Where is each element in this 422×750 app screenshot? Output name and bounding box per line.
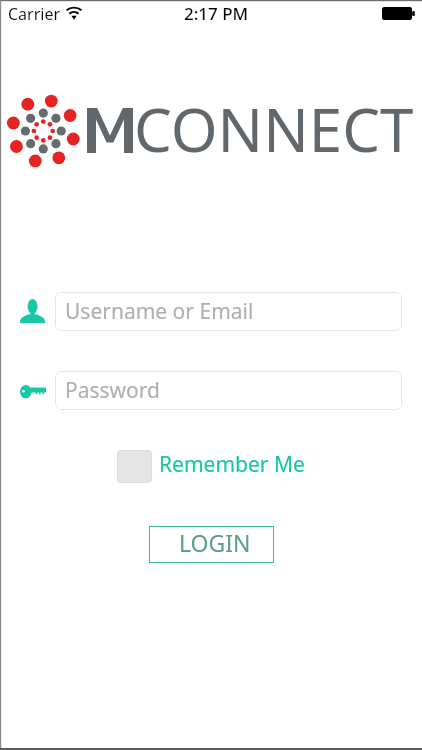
staticText: Username or Email [65, 297, 254, 326]
other: Password [20, 385, 46, 399]
other: Wi-Fi signal [66, 7, 82, 20]
button[interactable]: LOGIN [149, 526, 274, 563]
staticText: LOGIN [179, 527, 251, 558]
staticText: 2:17 PM [184, 2, 249, 25]
other: User [20, 299, 45, 323]
staticText: Remember Me [159, 450, 305, 479]
staticText: Carrier [8, 3, 61, 25]
other: Battery full [382, 7, 415, 20]
button[interactable]: Password [55, 371, 402, 410]
other: MConnect logo [6, 94, 81, 169]
button[interactable]: Username or Email [55, 292, 402, 331]
staticText: CONNECT [134, 88, 414, 170]
button[interactable]: Remember Me [117, 450, 305, 483]
staticText: Password [65, 376, 160, 405]
